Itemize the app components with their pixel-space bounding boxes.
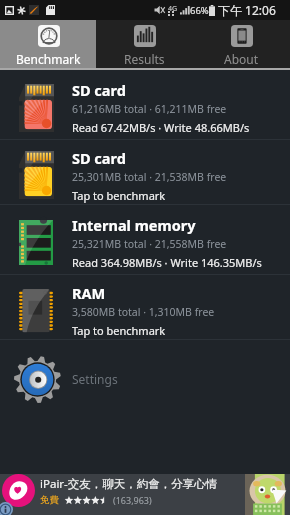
staticText: Benchmark — [16, 51, 81, 67]
staticText: SD card — [72, 148, 126, 168]
button[interactable]: RAM — [0, 275, 290, 339]
button[interactable]: Benchmark — [0, 20, 96, 68]
staticText: 25,321MB total · 21,558MB free — [72, 237, 227, 251]
button[interactable]: SD card — [0, 140, 290, 204]
button[interactable]: About — [193, 20, 290, 68]
staticText: 66% — [190, 4, 209, 17]
staticText: 3,580MB total · 1,310MB free — [72, 305, 215, 319]
button[interactable]: Settings — [0, 340, 290, 410]
button[interactable]: SD card — [0, 70, 290, 139]
staticText: About — [224, 51, 259, 67]
button[interactable]: Results — [96, 20, 193, 68]
button[interactable]: Internal memory — [0, 205, 290, 274]
other: Settings — [14, 356, 61, 403]
staticText: Tap to benchmark — [72, 323, 166, 338]
staticText: Settings — [72, 371, 118, 387]
staticText: 下午 12:06 — [218, 2, 276, 18]
staticText: Read 67.42MB/s · Write 48.66MB/s — [72, 120, 250, 135]
staticText: (163,963) — [113, 494, 152, 506]
staticText: Tap to benchmark — [72, 188, 166, 203]
staticText: 61,216MB total · 61,211MB free — [72, 102, 227, 116]
staticText: Internal memory — [72, 215, 196, 235]
button[interactable]: iPair-交友，聊天，約會，分享心情 — [0, 474, 290, 515]
staticText: iPair-交友，聊天，約會，分享心情 — [40, 476, 218, 492]
staticText: RAM — [72, 283, 106, 303]
staticText: 25,301MB total · 21,538MB free — [72, 170, 227, 184]
staticText: 4G — [168, 4, 178, 14]
staticText: Results — [124, 51, 165, 67]
staticText: SD card — [72, 80, 126, 100]
staticText: Read 364.98MB/s · Write 146.35MB/s — [72, 255, 262, 270]
staticText: 免費 — [40, 494, 59, 506]
